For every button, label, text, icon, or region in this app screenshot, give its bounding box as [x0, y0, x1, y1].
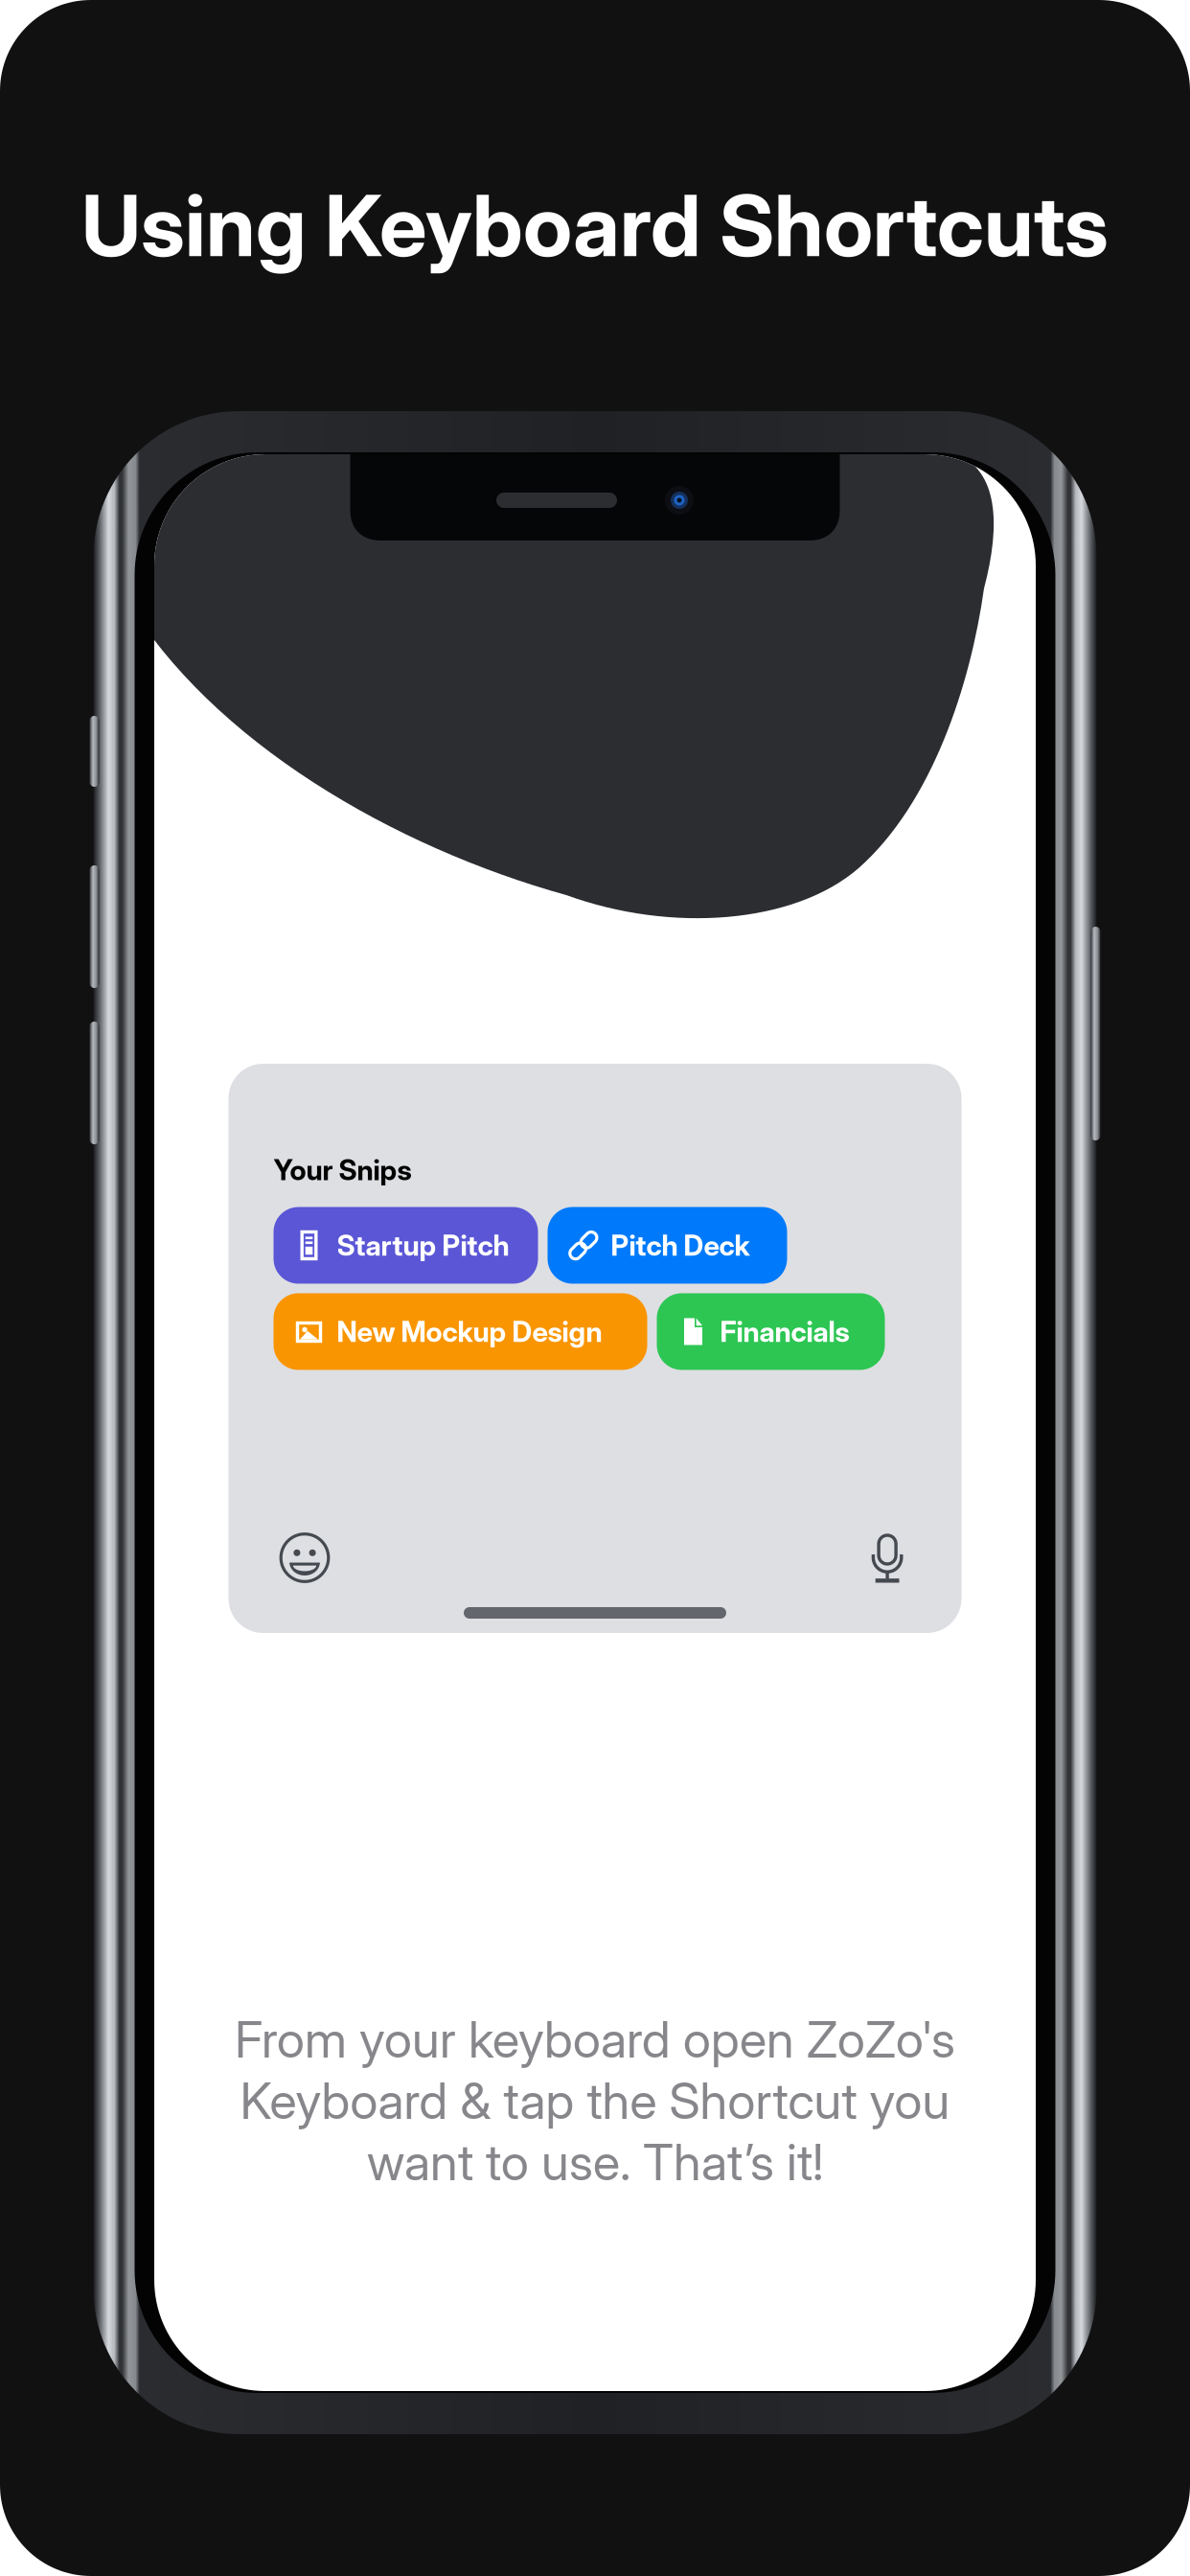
staticText: want to use. That’s it!	[367, 2132, 823, 2192]
staticText: New Mockup Design	[337, 1315, 602, 1349]
staticText: Pitch Deck	[611, 1228, 750, 1262]
staticText: Using Keyboard Shortcuts	[81, 174, 1109, 276]
button[interactable]: Financials	[657, 1293, 885, 1370]
button[interactable]: New Mockup Design	[274, 1293, 647, 1370]
staticText: Startup Pitch	[337, 1228, 509, 1262]
staticText: Your Snips	[274, 1153, 412, 1187]
button[interactable]: Dictation	[872, 1533, 902, 1583]
button[interactable]: Emoji keyboard	[279, 1532, 330, 1583]
button[interactable]: Pitch Deck	[548, 1207, 787, 1284]
staticText: Financials	[720, 1315, 849, 1349]
staticText: From your keyboard open ZoZo's	[235, 2009, 955, 2070]
staticText: Keyboard & tap the Shortcut you	[240, 2070, 950, 2131]
button[interactable]: Startup Pitch	[274, 1207, 538, 1284]
